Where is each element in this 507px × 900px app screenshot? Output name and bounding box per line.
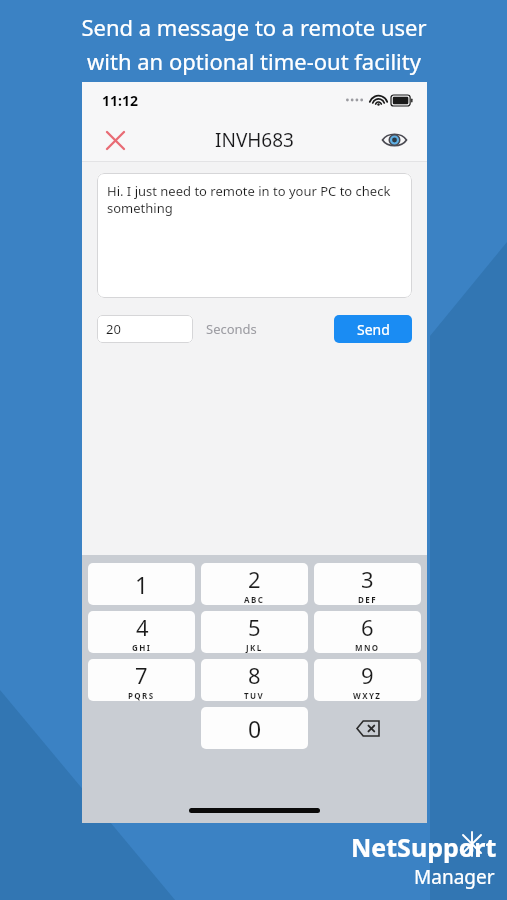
staticText: Seconds bbox=[206, 320, 257, 338]
staticText: 4 bbox=[136, 612, 149, 642]
button[interactable]: 2 bbox=[201, 563, 308, 605]
staticText: 11:12 bbox=[102, 91, 138, 110]
button[interactable]: View bbox=[377, 123, 411, 157]
staticText: JKL bbox=[246, 642, 263, 653]
staticText: 20 bbox=[106, 320, 121, 338]
staticText: Send a message to a remote user bbox=[81, 12, 427, 42]
button[interactable]: 4 bbox=[88, 611, 195, 653]
button[interactable]: 9 bbox=[314, 659, 421, 701]
staticText: 7 bbox=[135, 660, 148, 690]
staticText: MNO bbox=[355, 642, 380, 653]
staticText: with an optional time-out facility bbox=[87, 46, 421, 76]
staticText: Manager bbox=[414, 864, 495, 890]
button[interactable]: 1 bbox=[88, 563, 195, 605]
staticText: GHI bbox=[132, 642, 152, 653]
button[interactable]: 3 bbox=[314, 563, 421, 605]
button[interactable]: 6 bbox=[314, 611, 421, 653]
staticText: 0 bbox=[248, 713, 262, 744]
staticText: 5 bbox=[248, 612, 261, 642]
button[interactable]: 7 bbox=[88, 659, 195, 701]
staticText: 3 bbox=[361, 564, 374, 594]
button[interactable]: Hi. I just need to remote in to your PC … bbox=[97, 173, 412, 298]
staticText: Hi. I just need to remote in to your PC … bbox=[107, 182, 402, 217]
staticText: 1 bbox=[135, 569, 149, 600]
button[interactable]: 8 bbox=[201, 659, 308, 701]
staticText: INVH683 bbox=[215, 127, 294, 153]
staticText: 9 bbox=[361, 660, 374, 690]
button[interactable]: Backspace bbox=[314, 707, 421, 749]
staticText: 2 bbox=[248, 564, 261, 594]
button[interactable]: 20 bbox=[97, 315, 193, 343]
staticText: DEF bbox=[358, 594, 377, 605]
button[interactable]: Close bbox=[98, 123, 132, 157]
staticText: 6 bbox=[361, 612, 374, 642]
staticText: PQRS bbox=[128, 690, 155, 701]
staticText: ABC bbox=[244, 594, 265, 605]
staticText: 8 bbox=[248, 660, 261, 690]
button[interactable]: Send bbox=[334, 315, 412, 343]
staticText: TUV bbox=[244, 690, 265, 701]
button[interactable]: 0 bbox=[201, 707, 308, 749]
staticText: NetSupport bbox=[351, 830, 497, 864]
button[interactable]: 5 bbox=[201, 611, 308, 653]
staticText: Send bbox=[357, 320, 390, 339]
staticText: WXYZ bbox=[353, 690, 382, 701]
